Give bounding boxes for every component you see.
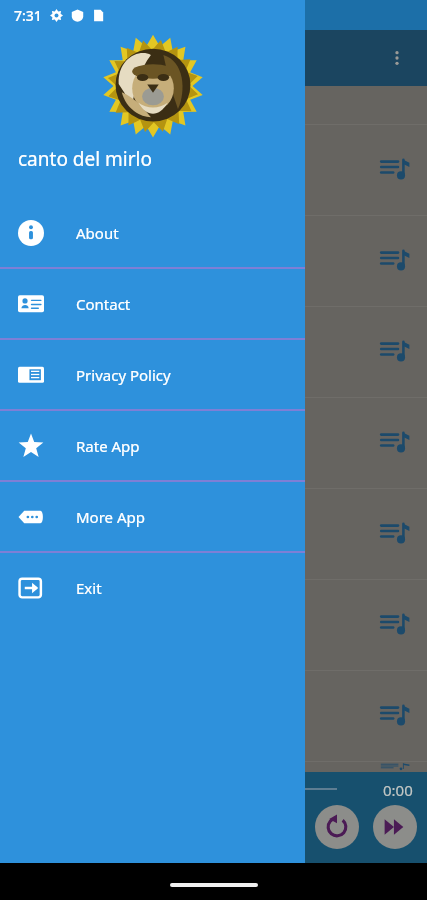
button[interactable]: Fast forward bbox=[373, 805, 417, 849]
staticText: Exit bbox=[76, 578, 102, 598]
button[interactable]: Playlist bbox=[0, 671, 427, 761]
other: Playlist bbox=[377, 698, 413, 734]
button[interactable]: Rate App bbox=[0, 411, 305, 480]
staticText: 7:31 bbox=[14, 6, 42, 25]
button[interactable]: Privacy Policy bbox=[0, 340, 305, 409]
button[interactable]: Playlist bbox=[0, 489, 427, 579]
button[interactable]: Playlist bbox=[0, 762, 427, 772]
button[interactable]: Playlist bbox=[0, 307, 427, 397]
other: Playlist bbox=[377, 152, 413, 188]
other: Playlist bbox=[377, 516, 413, 552]
other: Playlist bbox=[377, 425, 413, 461]
staticText: 0:00 bbox=[383, 780, 413, 800]
button[interactable]: Playlist bbox=[0, 125, 427, 215]
button[interactable]: More options bbox=[377, 38, 417, 78]
button[interactable]: Replay bbox=[315, 805, 359, 849]
other: Playlist bbox=[377, 243, 413, 279]
staticText: Rate App bbox=[76, 436, 140, 456]
staticText: About bbox=[76, 223, 119, 243]
staticText: More App bbox=[76, 507, 145, 527]
staticText: canto del mirlo bbox=[18, 146, 152, 172]
button[interactable]: Playlist bbox=[0, 216, 427, 306]
staticText: Privacy Policy bbox=[76, 365, 171, 385]
button[interactable]: Playlist bbox=[0, 398, 427, 488]
staticText: Contact bbox=[76, 294, 131, 314]
other: Playlist bbox=[377, 762, 413, 772]
button[interactable] bbox=[0, 86, 427, 124]
button[interactable]: About bbox=[0, 198, 305, 267]
other: Playlist bbox=[377, 334, 413, 370]
button[interactable]: Contact bbox=[0, 269, 305, 338]
button[interactable]: Playlist bbox=[0, 580, 427, 670]
button[interactable]: More App bbox=[0, 482, 305, 551]
other: Playlist bbox=[377, 607, 413, 643]
button[interactable]: Exit bbox=[0, 553, 305, 622]
